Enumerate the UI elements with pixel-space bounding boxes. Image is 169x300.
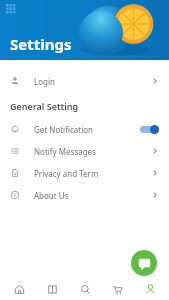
button[interactable]: About Us	[0, 184, 169, 206]
staticText: Notify Messages	[34, 146, 96, 157]
staticText: Settings	[10, 34, 72, 54]
button[interactable]: Home	[5, 278, 33, 300]
button[interactable]: Chat	[131, 250, 157, 276]
staticText: Privacy and Term	[34, 168, 99, 179]
staticText: Login	[34, 76, 55, 87]
button[interactable]: Get Notification	[0, 118, 169, 140]
staticText: General Setting	[10, 100, 79, 112]
button[interactable]: Library	[38, 278, 66, 300]
button[interactable]: Login	[0, 70, 169, 92]
button[interactable]: Privacy and Term	[0, 162, 169, 184]
button[interactable]: Cart	[103, 278, 131, 300]
button[interactable]: Profile	[136, 278, 164, 300]
button[interactable]: Search	[71, 278, 99, 300]
staticText: About Us	[34, 190, 69, 201]
staticText: Get Notification	[34, 124, 94, 135]
button[interactable]: Notify Messages	[0, 140, 169, 162]
